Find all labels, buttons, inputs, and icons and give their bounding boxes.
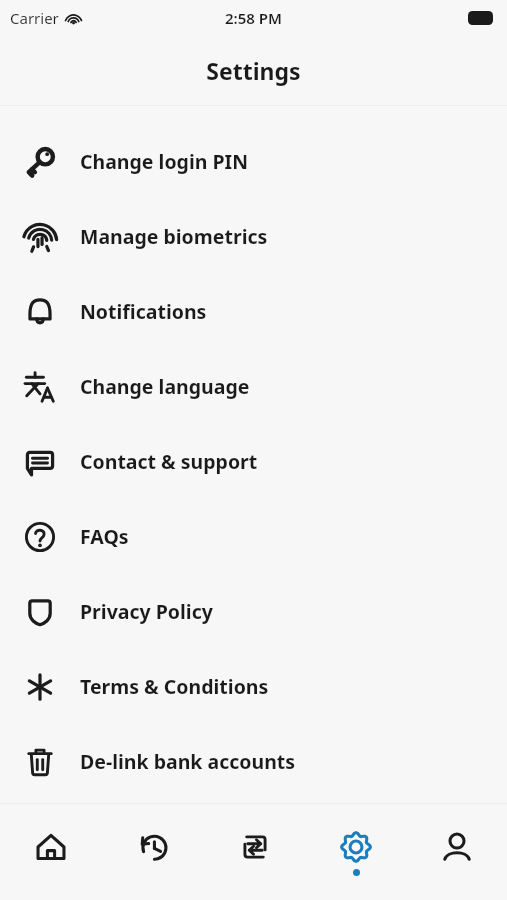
button[interactable]: Change login PIN — [0, 124, 507, 199]
staticText: Manage biometrics — [80, 223, 268, 250]
staticText: De-link bank accounts — [80, 748, 296, 775]
button[interactable]: Terms & Conditions — [0, 649, 507, 724]
button[interactable]: Contact & support — [0, 424, 507, 499]
button[interactable]: De-link bank accounts — [0, 724, 507, 799]
staticText: Notifications — [80, 298, 207, 325]
button[interactable]: Settings — [305, 804, 406, 900]
button[interactable]: FAQs — [0, 499, 507, 574]
staticText: Change language — [80, 373, 250, 400]
button[interactable]: Home — [0, 804, 102, 900]
button[interactable]: History — [102, 804, 204, 900]
button[interactable]: Transfers — [204, 804, 305, 900]
staticText: Privacy Policy — [80, 598, 213, 625]
button[interactable]: Manage biometrics — [0, 199, 507, 274]
staticText: Terms & Conditions — [80, 673, 269, 700]
button[interactable]: Change language — [0, 349, 507, 424]
staticText: Carrier — [10, 8, 59, 28]
staticText: Change login PIN — [80, 148, 249, 175]
staticText: FAQs — [80, 523, 129, 550]
button[interactable]: Notifications — [0, 274, 507, 349]
button[interactable]: Profile — [406, 804, 507, 900]
staticText: Settings — [206, 55, 301, 86]
staticText: Contact & support — [80, 448, 258, 475]
staticText: 2:58 PM — [225, 8, 282, 28]
button[interactable]: Privacy Policy — [0, 574, 507, 649]
